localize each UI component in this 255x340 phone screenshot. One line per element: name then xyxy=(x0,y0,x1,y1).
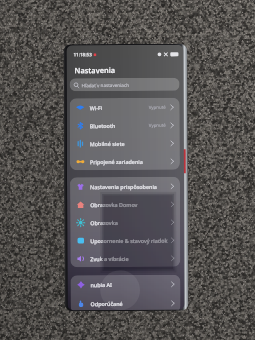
button[interactable]: Pripojené zariadenia xyxy=(70,152,180,170)
staticText: nubia AI xyxy=(90,281,112,288)
staticText: Nastavenia prispôsobenia xyxy=(90,183,157,190)
button[interactable]: Upozornenie & stavový riadok xyxy=(70,231,180,249)
staticText: Obrazovka xyxy=(90,219,118,226)
button[interactable]: Odporúčané xyxy=(70,294,181,310)
button[interactable]: Nastavenia prispôsobenia xyxy=(70,177,180,195)
staticText: Vypnuté xyxy=(149,122,167,128)
staticText: Zvuk a vibrácie xyxy=(90,255,129,262)
staticText: Bluetooth xyxy=(90,122,116,129)
staticText: Nastavenia xyxy=(74,65,115,75)
staticText: Pripojené zariadenia xyxy=(90,158,143,165)
button[interactable]: Bluetooth xyxy=(70,116,180,134)
staticText: Upozornenie & stavový riadok xyxy=(90,237,168,244)
staticText: Vypnuté xyxy=(149,104,167,110)
button[interactable]: Hľadať v nastaveniach xyxy=(70,78,180,91)
staticText: Obrazovka Domov xyxy=(90,201,138,208)
staticText: Mobilné siete xyxy=(90,140,125,147)
staticText: Hľadať v nastaveniach xyxy=(82,82,130,88)
staticText: Odporúčané xyxy=(90,300,123,307)
button[interactable]: nubia AI xyxy=(70,275,180,294)
staticText: Wi-Fi xyxy=(90,104,103,111)
button[interactable]: Zvuk a vibrácie xyxy=(70,249,180,267)
button[interactable]: Wi-Fi xyxy=(70,98,180,116)
button[interactable]: Obrazovka xyxy=(70,213,180,231)
button[interactable]: Obrazovka Domov xyxy=(70,195,180,213)
button[interactable]: Mobilné siete xyxy=(70,134,180,152)
staticText: 11:18:53 xyxy=(73,51,92,57)
